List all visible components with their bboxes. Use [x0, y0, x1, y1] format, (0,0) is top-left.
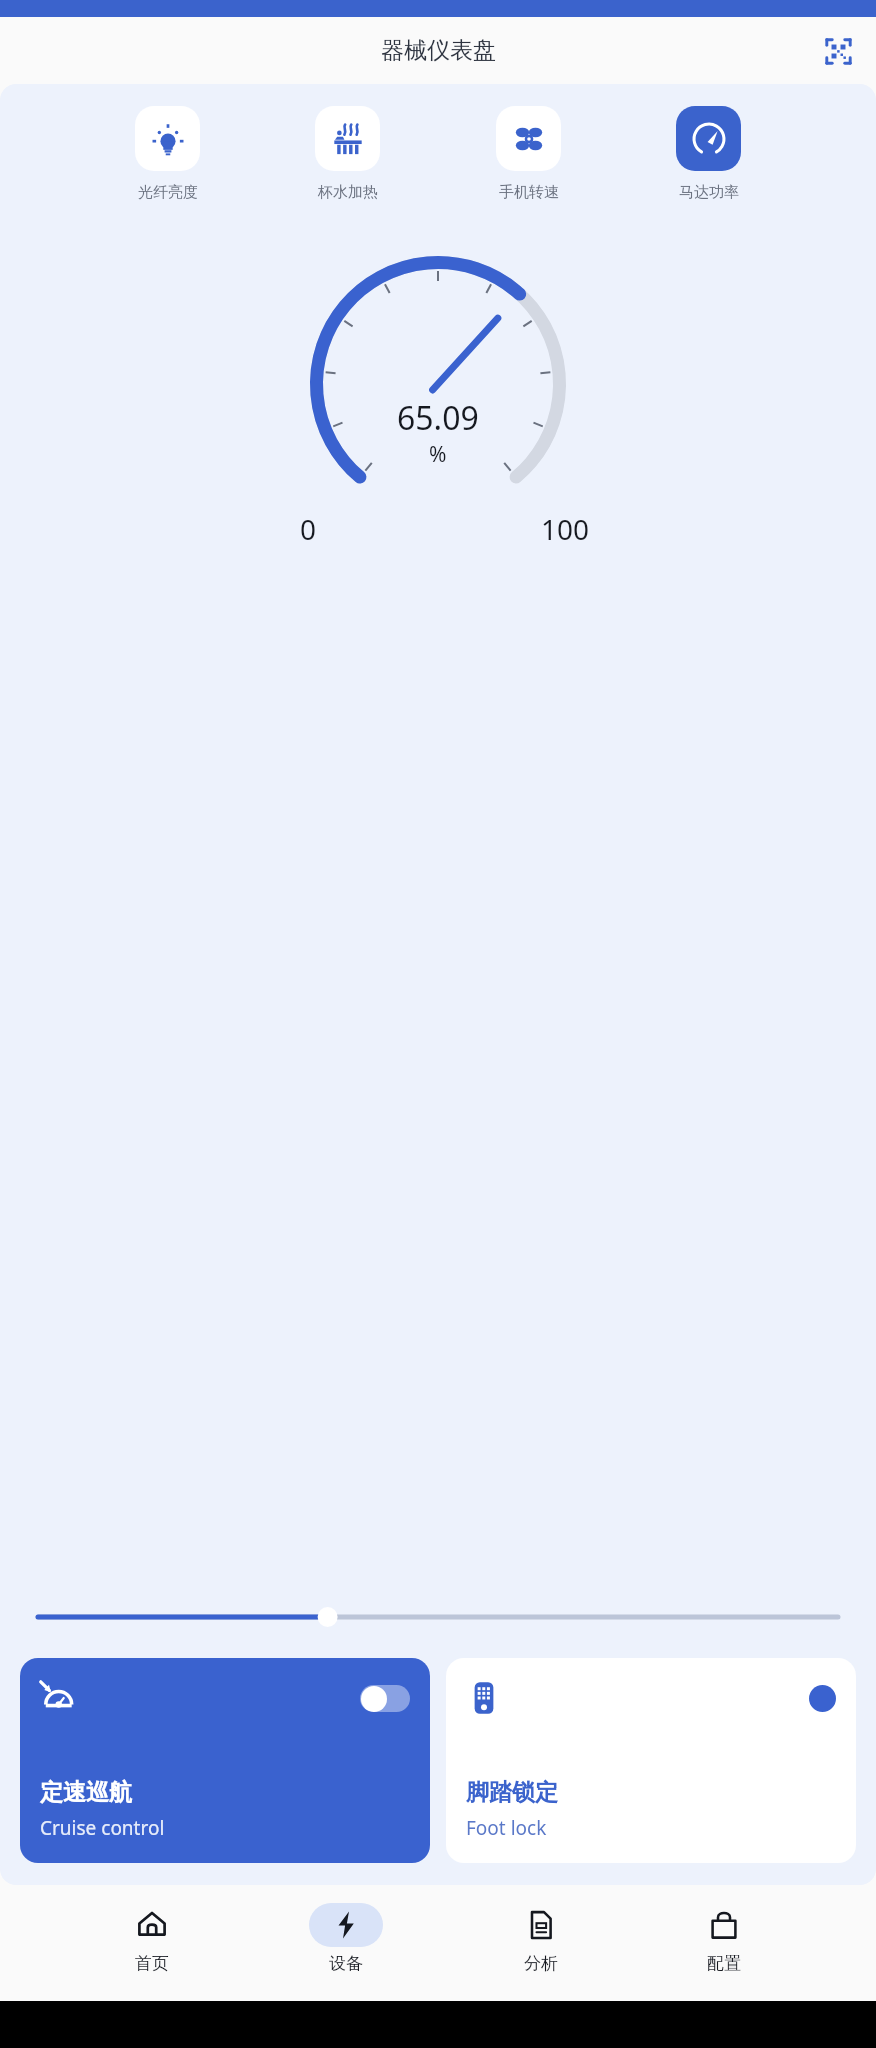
button[interactable]: 手机转速 — [496, 106, 561, 202]
staticText: 马达功率 — [679, 183, 739, 202]
staticText: Foot lock — [466, 1815, 547, 1841]
staticText: 分析 — [524, 1953, 558, 1974]
button[interactable]: 光纤亮度 — [135, 106, 200, 202]
staticText: 100 — [541, 510, 590, 548]
button[interactable]: 设备 — [303, 1891, 389, 1974]
staticText: 配置 — [707, 1953, 741, 1974]
button[interactable]: 配置 — [692, 1891, 756, 1974]
staticText: 脚踏锁定 — [466, 1778, 558, 1807]
staticText: 65.09 — [397, 396, 479, 440]
staticText: 0 — [300, 510, 317, 548]
button[interactable]: Value slider — [38, 1602, 838, 1632]
staticText: 杯水加热 — [318, 183, 378, 202]
staticText: 设备 — [329, 1953, 363, 1974]
staticText: 首页 — [135, 1953, 169, 1974]
staticText: 手机转速 — [499, 183, 559, 202]
button[interactable]: 杯水加热 — [315, 106, 380, 202]
button[interactable]: 定速巡航 — [20, 1658, 430, 1863]
button[interactable]: 首页 — [120, 1891, 184, 1974]
staticText: Cruise control — [40, 1815, 165, 1841]
button[interactable]: 分析 — [509, 1891, 573, 1974]
staticText: 光纤亮度 — [138, 183, 198, 202]
staticText: 器械仪表盘 — [381, 36, 496, 65]
button[interactable]: 脚踏锁定 — [446, 1658, 856, 1863]
button[interactable]: 马达功率 — [676, 106, 741, 202]
button[interactable]: Scan QR code — [818, 31, 858, 71]
staticText: 定速巡航 — [40, 1778, 132, 1807]
staticText: % — [429, 440, 447, 469]
